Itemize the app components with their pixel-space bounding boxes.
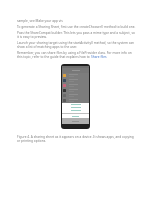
staticText: it is easy to preview. xyxy=(17,35,47,39)
staticText: show a list of matching apps to the user… xyxy=(17,45,77,49)
staticText: or printing options. xyxy=(17,139,47,143)
staticText: Pass the ShareCompat builder. This lets … xyxy=(17,31,135,35)
staticText: Figure 4. A sharing sheet as it appears … xyxy=(17,135,134,139)
staticText: To generate a Sharing Sheet, first use t… xyxy=(17,25,136,29)
staticText: Remember, you can share files by using a… xyxy=(17,51,132,55)
staticText: Launch your sharing target using the sta… xyxy=(17,41,135,45)
staticText: this topic, refer to the guide that expl… xyxy=(17,55,91,59)
staticText: Share files xyxy=(91,55,107,59)
staticText: sample, see Make your app vis xyxy=(17,19,63,23)
